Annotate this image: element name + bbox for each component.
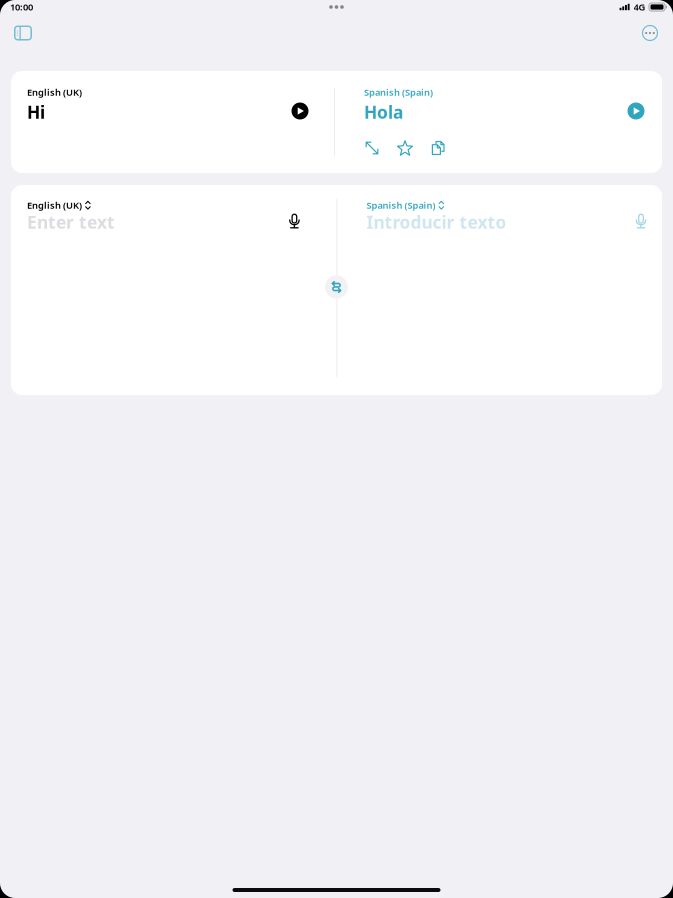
button[interactable]: Play <box>287 98 313 124</box>
button[interactable]: More <box>636 19 664 47</box>
staticText: English (UK) <box>27 86 82 98</box>
staticText: Hi <box>27 100 45 123</box>
button[interactable]: Favourite <box>389 135 421 161</box>
button[interactable]: Dictate <box>280 208 308 234</box>
staticText: Spanish (Spain) <box>364 86 433 98</box>
button[interactable]: Dictate <box>627 208 655 234</box>
button[interactable]: Expand <box>356 135 388 161</box>
button[interactable]: Sidebar <box>8 19 38 47</box>
staticText: English (UK) <box>27 199 82 211</box>
staticText: 10:00 <box>10 1 33 13</box>
staticText: 4G <box>633 1 645 13</box>
staticText: Enter text <box>27 210 115 233</box>
staticText: Spanish (Spain) <box>366 199 435 211</box>
button[interactable]: Swap languages <box>321 272 351 302</box>
button[interactable]: Play <box>623 98 649 124</box>
button[interactable]: Copy <box>422 135 454 161</box>
staticText: Introducir texto <box>366 210 506 233</box>
staticText: Hola <box>364 100 403 123</box>
